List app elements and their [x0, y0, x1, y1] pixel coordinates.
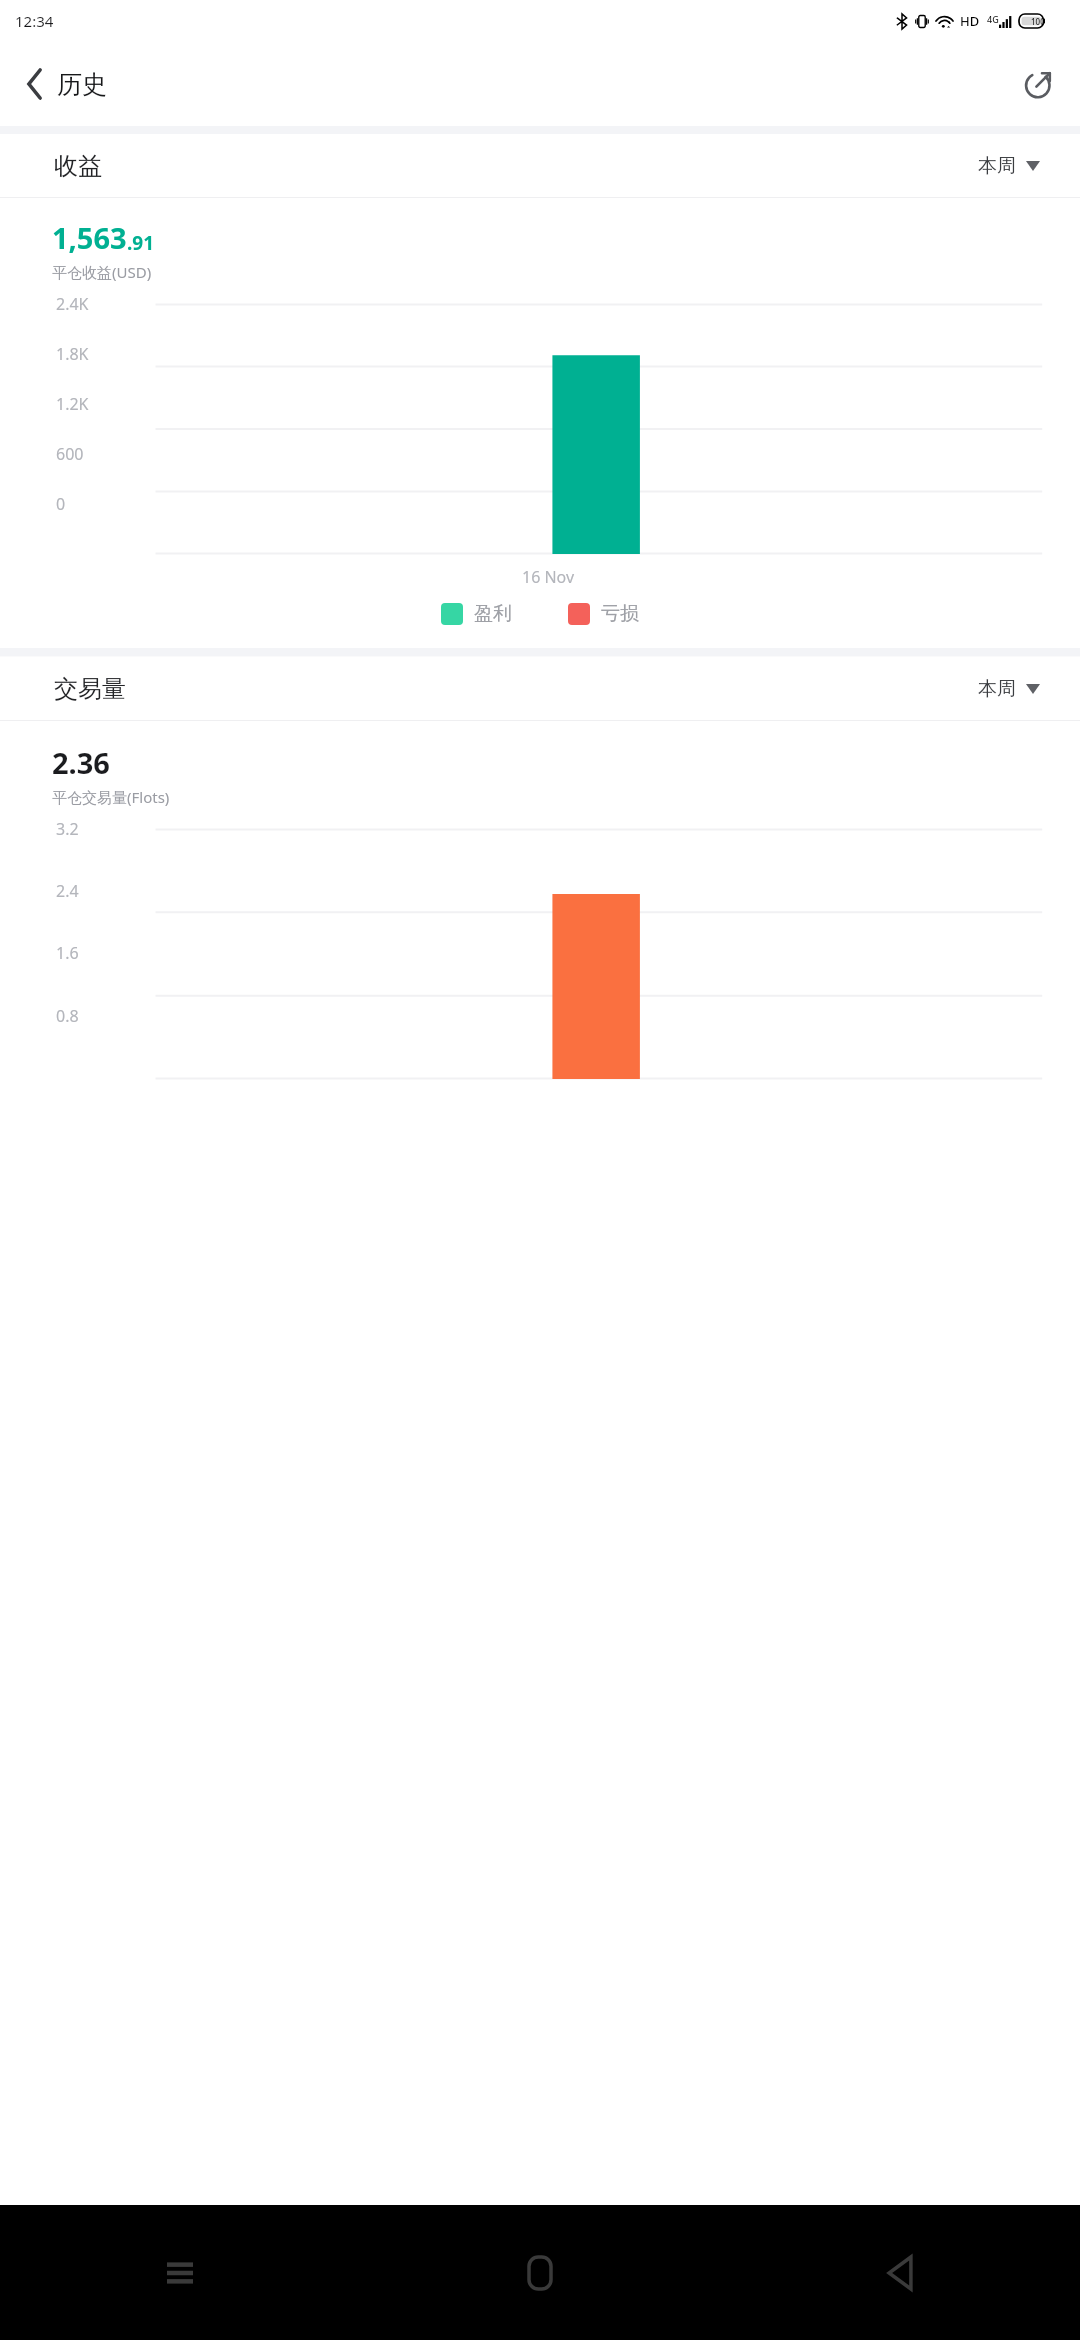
- staticText: 本周: [978, 154, 1016, 178]
- button[interactable]: 盈利: [441, 602, 512, 626]
- staticText: 0.8: [56, 1005, 79, 1027]
- staticText: 100: [1031, 16, 1045, 27]
- staticText: 亏损: [601, 602, 639, 626]
- staticText: 平仓收益(USD): [52, 262, 152, 282]
- staticText: 16 Nov: [522, 566, 575, 588]
- button[interactable]: 亏损: [568, 602, 639, 626]
- staticText: 历史: [57, 69, 107, 100]
- staticText: 1.2K: [56, 393, 89, 415]
- staticText: 平仓交易量(Flots): [52, 787, 170, 807]
- button[interactable]: Recents: [0, 2205, 360, 2340]
- staticText: 收益: [54, 151, 102, 181]
- button[interactable]: Back: [720, 2205, 1080, 2340]
- staticText: .91: [127, 230, 155, 256]
- staticText: HD: [960, 12, 980, 30]
- button[interactable]: Home: [360, 2205, 720, 2340]
- staticText: 3.2: [56, 818, 79, 840]
- button[interactable]: 本周: [978, 154, 1040, 178]
- button[interactable]: Back: [6, 55, 64, 113]
- staticText: 2.36: [52, 743, 110, 782]
- button[interactable]: Share: [1010, 55, 1068, 113]
- staticText: 1,563: [52, 218, 127, 257]
- staticText: 2.4: [56, 880, 79, 902]
- staticText: 12:34: [15, 11, 54, 31]
- staticText: 2.4K: [56, 293, 89, 315]
- staticText: 本周: [978, 677, 1016, 701]
- staticText: 0: [56, 493, 66, 515]
- staticText: 盈利: [474, 602, 512, 626]
- staticText: 交易量: [54, 674, 126, 704]
- staticText: 1.6: [56, 942, 79, 964]
- staticText: 4G: [987, 13, 999, 25]
- staticText: 600: [56, 443, 84, 465]
- staticText: 1.8K: [56, 343, 89, 365]
- button[interactable]: 本周: [978, 677, 1040, 701]
